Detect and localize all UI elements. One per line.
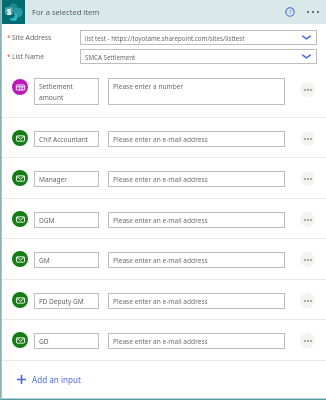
staticText: GD [39,337,49,346]
button[interactable]: DGM [34,212,99,228]
button[interactable]: More options [300,293,315,308]
button[interactable]: Please enter an e-mail address [108,333,285,349]
staticText: Chif Accountant [39,135,89,144]
staticText: GM [39,256,50,265]
button[interactable]: Help [283,5,297,19]
button[interactable]: Chif Accountant [34,131,99,147]
button[interactable]: More options [300,252,315,267]
button[interactable]: Email field [12,211,28,227]
button[interactable]: Please enter an e-mail address [108,293,285,309]
button[interactable]: Email field [12,332,28,348]
button[interactable]: Manager [34,171,99,187]
staticText: For a selected item [32,7,100,17]
button[interactable]: Settlement amount [34,78,99,105]
staticText: S [7,6,12,17]
button[interactable]: Please enter a number [108,78,285,105]
staticText: list test - https://toyotame.sharepoint.… [85,34,245,42]
staticText: Please enter an e-mail address [113,135,208,144]
staticText: List Name [12,52,44,61]
button[interactable]: Please enter an e-mail address [108,171,285,187]
button[interactable]: Email field [12,170,28,186]
staticText: Settlement amount [39,82,73,102]
button[interactable]: Number field [12,79,28,95]
button[interactable]: GM [34,252,99,268]
staticText: Please enter an e-mail address [113,337,208,346]
button[interactable]: Add an input [0,364,326,394]
button[interactable]: FD Deputy GM [34,293,99,309]
button[interactable]: Please enter an e-mail address [108,131,285,147]
staticText: DGM [39,216,55,225]
button[interactable]: More commands [306,5,320,19]
staticText: Please enter an e-mail address [113,297,208,306]
button[interactable]: Email field [12,292,28,308]
staticText: Please enter an e-mail address [113,216,208,225]
button[interactable]: GD [34,333,99,349]
staticText: Please enter an e-mail address [113,256,208,265]
button[interactable]: More options [300,212,315,227]
staticText: * [7,33,11,42]
staticText: * [7,52,11,61]
button[interactable]: Please enter an e-mail address [108,212,285,228]
button[interactable]: SMCA Settlement [80,49,317,64]
staticText: FD Deputy GM [39,297,84,306]
staticText: ? [289,8,292,16]
button[interactable]: Email field [12,130,28,146]
staticText: Manager [39,175,67,184]
button[interactable]: Email field [12,251,28,267]
staticText: Add an input [32,374,81,385]
staticText: Please enter an e-mail address [113,175,208,184]
button[interactable]: More options [300,171,315,186]
staticText: SMCA Settlement [85,53,136,61]
button[interactable]: list test - https://toyotame.sharepoint.… [80,30,317,45]
staticText: Please enter a number [113,82,184,91]
button[interactable]: More options [300,82,315,97]
button[interactable]: More options [300,131,315,146]
staticText: Site Address [12,33,52,42]
button[interactable]: Please enter an e-mail address [108,252,285,268]
button[interactable]: More options [300,333,315,348]
